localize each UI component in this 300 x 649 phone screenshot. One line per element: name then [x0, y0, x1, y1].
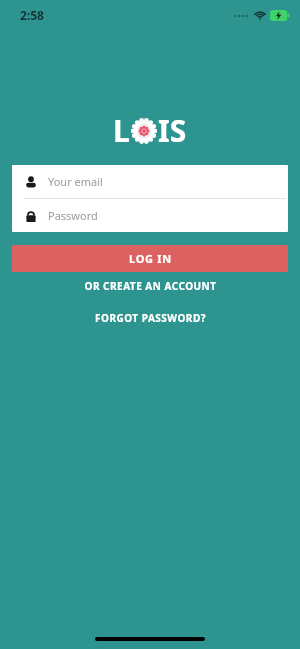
button[interactable]: FORGOT PASSWORD?	[12, 311, 288, 325]
staticText: IS	[158, 110, 187, 151]
staticText: FORGOT PASSWORD?	[95, 311, 206, 325]
staticText: LOG IN	[129, 251, 172, 266]
button[interactable]: OR CREATE AN ACCOUNT	[12, 279, 288, 293]
button[interactable]: LOG IN	[12, 245, 288, 272]
staticText: Password	[48, 208, 98, 223]
staticText: 2:58	[20, 7, 44, 23]
button[interactable]: Email field	[12, 165, 288, 198]
staticText: L	[113, 110, 130, 151]
staticText: Your email	[48, 174, 103, 189]
staticText: OR CREATE AN ACCOUNT	[84, 279, 217, 293]
button[interactable]: Password field	[12, 199, 288, 232]
